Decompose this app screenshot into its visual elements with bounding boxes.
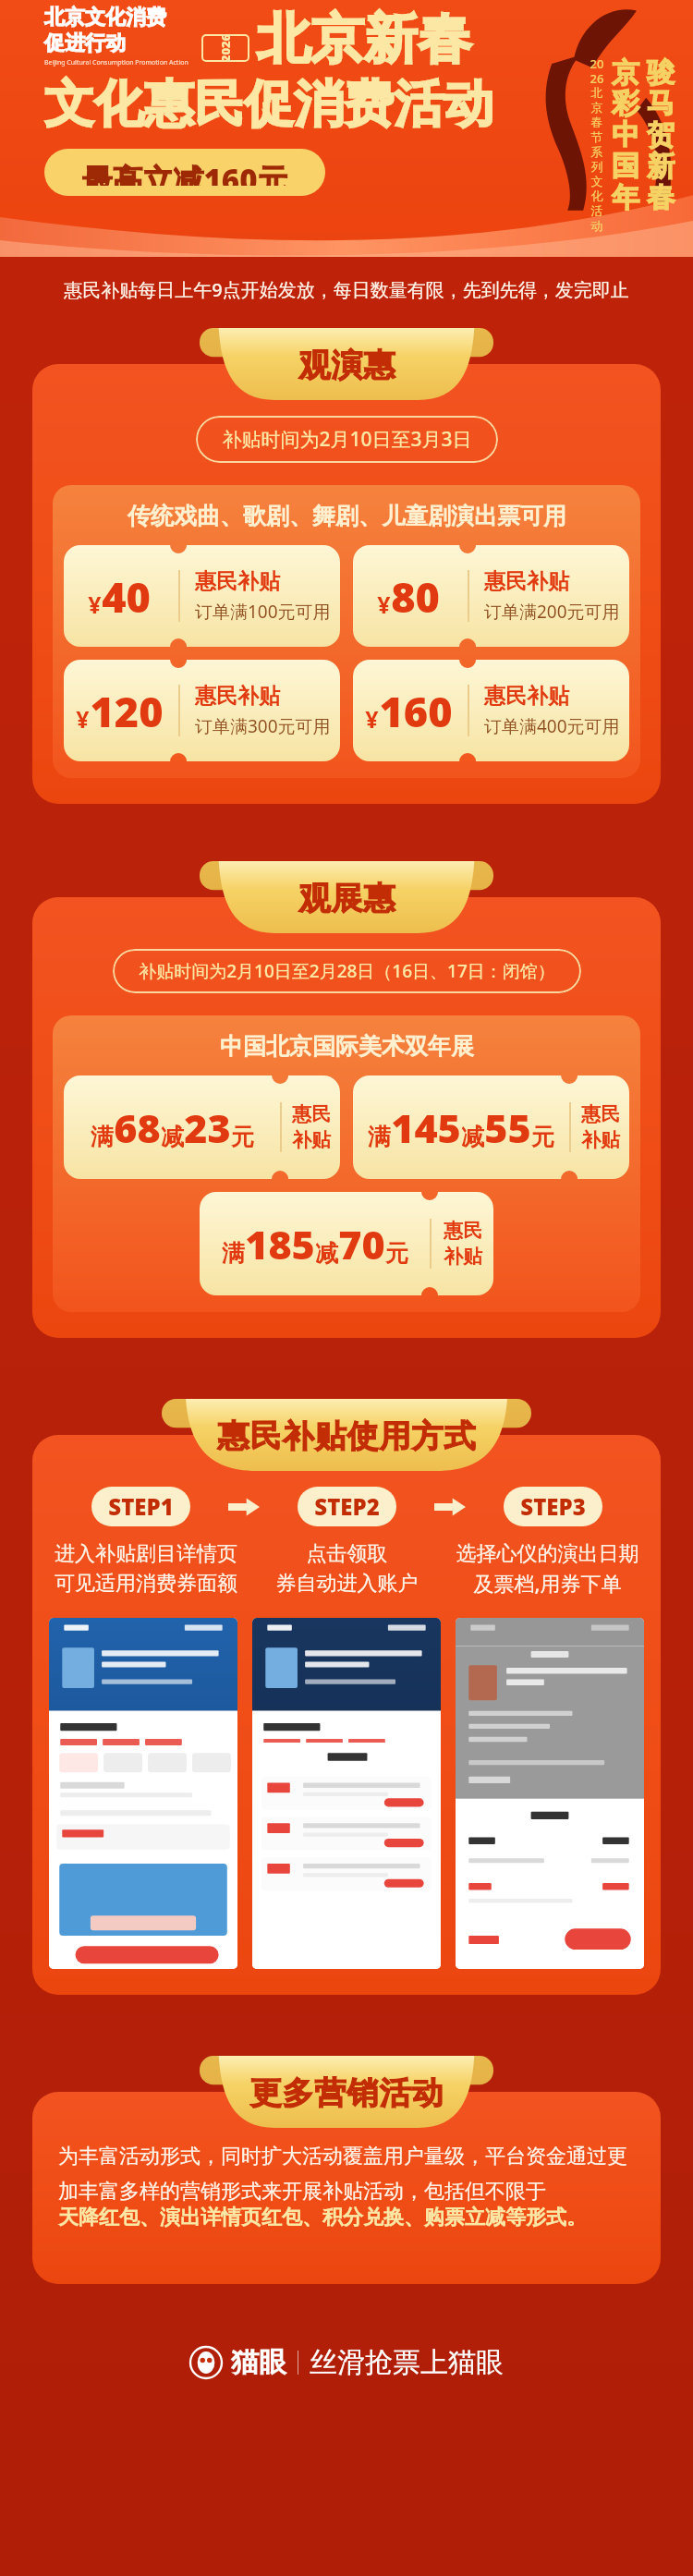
staticText: 满 — [368, 1123, 391, 1151]
button[interactable]: STEP3 — [504, 1487, 602, 1526]
staticText: 为丰富活动形式，同时扩大活动覆盖用户量级，平台资金通过更加丰富多样的营销形式来开… — [58, 2144, 635, 2205]
staticText: 160 — [379, 683, 453, 739]
staticText: 观展惠 — [298, 879, 395, 918]
button[interactable]: 补贴时间为2月10日至3月3日 — [196, 416, 498, 463]
staticText: 订单满400元可用 — [484, 714, 620, 738]
staticText: 68 — [114, 1100, 161, 1155]
staticText: 40 — [102, 568, 151, 625]
staticText: 元 — [385, 1239, 408, 1268]
button[interactable]: ¥ — [64, 660, 340, 761]
other: Next step — [228, 1496, 260, 1518]
staticText: 惠民 — [292, 1102, 331, 1126]
staticText: 23 — [184, 1100, 231, 1155]
staticText: 惠民补贴 — [195, 568, 280, 595]
button[interactable]: ¥ — [64, 545, 340, 647]
button[interactable]: STEP2 — [298, 1487, 396, 1526]
staticText: 减 — [461, 1123, 484, 1151]
staticText: 元 — [231, 1123, 254, 1151]
button[interactable]: 补贴时间为2月10日至2月28日（16日、17日：闭馆） — [113, 949, 581, 993]
staticText: 订单满200元可用 — [484, 600, 620, 624]
staticText: 元 — [531, 1123, 554, 1151]
staticText: 补贴时间为2月10日至2月28日（16日、17日：闭馆） — [139, 959, 555, 983]
staticText: 惠民补贴 — [484, 568, 569, 595]
staticText: 惠民补贴使用方式 — [217, 1416, 476, 1456]
staticText: 惠民 — [444, 1219, 482, 1243]
staticText: ¥ — [76, 703, 90, 735]
staticText: 更多营销活动 — [249, 2073, 444, 2113]
staticText: 点击领取 券自动进入账户 — [247, 1541, 447, 1596]
staticText: 80 — [391, 568, 440, 625]
staticText: 补贴时间为2月10日至3月3日 — [222, 426, 472, 453]
staticText: 满 — [222, 1239, 245, 1268]
button[interactable]: 满 — [353, 1075, 629, 1179]
button[interactable]: ¥ — [353, 660, 629, 761]
other: Maoyan logo — [190, 2347, 222, 2378]
staticText: 满 — [91, 1123, 114, 1151]
staticText: ¥ — [365, 703, 379, 735]
button[interactable]: Maoyan logo — [0, 2339, 693, 2386]
staticText: 惠民补贴每日上午9点开始发放，每日数量有限，先到先得，发完即止 — [22, 277, 671, 302]
staticText: ¥ — [88, 589, 102, 620]
staticText: 北京新春 — [257, 6, 471, 73]
staticText: 订单满300元可用 — [195, 714, 331, 738]
staticText: 120 — [90, 683, 164, 739]
staticText: 选择心仪的演出日期 及票档,用券下单 — [447, 1541, 648, 1598]
staticText: 中国北京国际美术双年展 — [220, 1032, 474, 1061]
staticText: 京彩中国年 — [610, 55, 641, 215]
staticText: 订单满100元可用 — [195, 600, 331, 624]
staticText: 传统戏曲、歌剧、舞剧、儿童剧演出票可用 — [128, 502, 566, 530]
staticText: 2026北京春节系列文化活动 — [590, 55, 604, 234]
staticText: STEP2 — [314, 1491, 380, 1522]
staticText: 55 — [484, 1100, 531, 1155]
button[interactable]: STEP1 — [91, 1487, 190, 1526]
staticText: 2026 — [217, 27, 234, 69]
staticText: 惠民 — [581, 1102, 620, 1126]
staticText: 猫眼 — [231, 2345, 286, 2380]
staticText: STEP3 — [520, 1491, 586, 1522]
staticText: 70 — [338, 1217, 385, 1271]
button[interactable]: 满 — [200, 1192, 493, 1295]
staticText: 惠民补贴 — [484, 683, 569, 710]
staticText: 减 — [315, 1239, 338, 1268]
button[interactable]: 最高立减160元 — [44, 149, 325, 196]
staticText: 丝滑抢票上猫眼 — [310, 2345, 504, 2380]
staticText: Beijing Cultural Consumption Promotion A… — [44, 58, 188, 67]
staticText: 补贴 — [581, 1128, 620, 1152]
button[interactable]: ¥ — [353, 545, 629, 647]
staticText: ¥ — [377, 589, 391, 620]
staticText: 惠民补贴 — [195, 683, 280, 710]
staticText: 文化惠民促消费活动 — [44, 73, 493, 136]
staticText: 北京文化消费 — [44, 5, 166, 30]
staticText: 骏马贺新春 — [645, 55, 676, 215]
staticText: 185 — [245, 1217, 315, 1271]
staticText: 最高立减160元 — [81, 159, 288, 186]
button[interactable]: 满 — [64, 1075, 340, 1179]
staticText: 促进行动 — [44, 30, 126, 56]
staticText: 观演惠 — [298, 346, 395, 385]
staticText: 145 — [391, 1100, 461, 1155]
other: Next step — [434, 1496, 466, 1518]
staticText: 补贴 — [292, 1128, 331, 1152]
staticText: 补贴 — [444, 1245, 482, 1269]
staticText: 减 — [161, 1123, 184, 1151]
staticText: 进入补贴剧目详情页 可见适用消费券面额 — [45, 1541, 247, 1596]
staticText: STEP1 — [108, 1491, 174, 1522]
staticText: 天降红包、演出详情页红包、积分兑换、购票立减等形式。 — [58, 2205, 635, 2230]
